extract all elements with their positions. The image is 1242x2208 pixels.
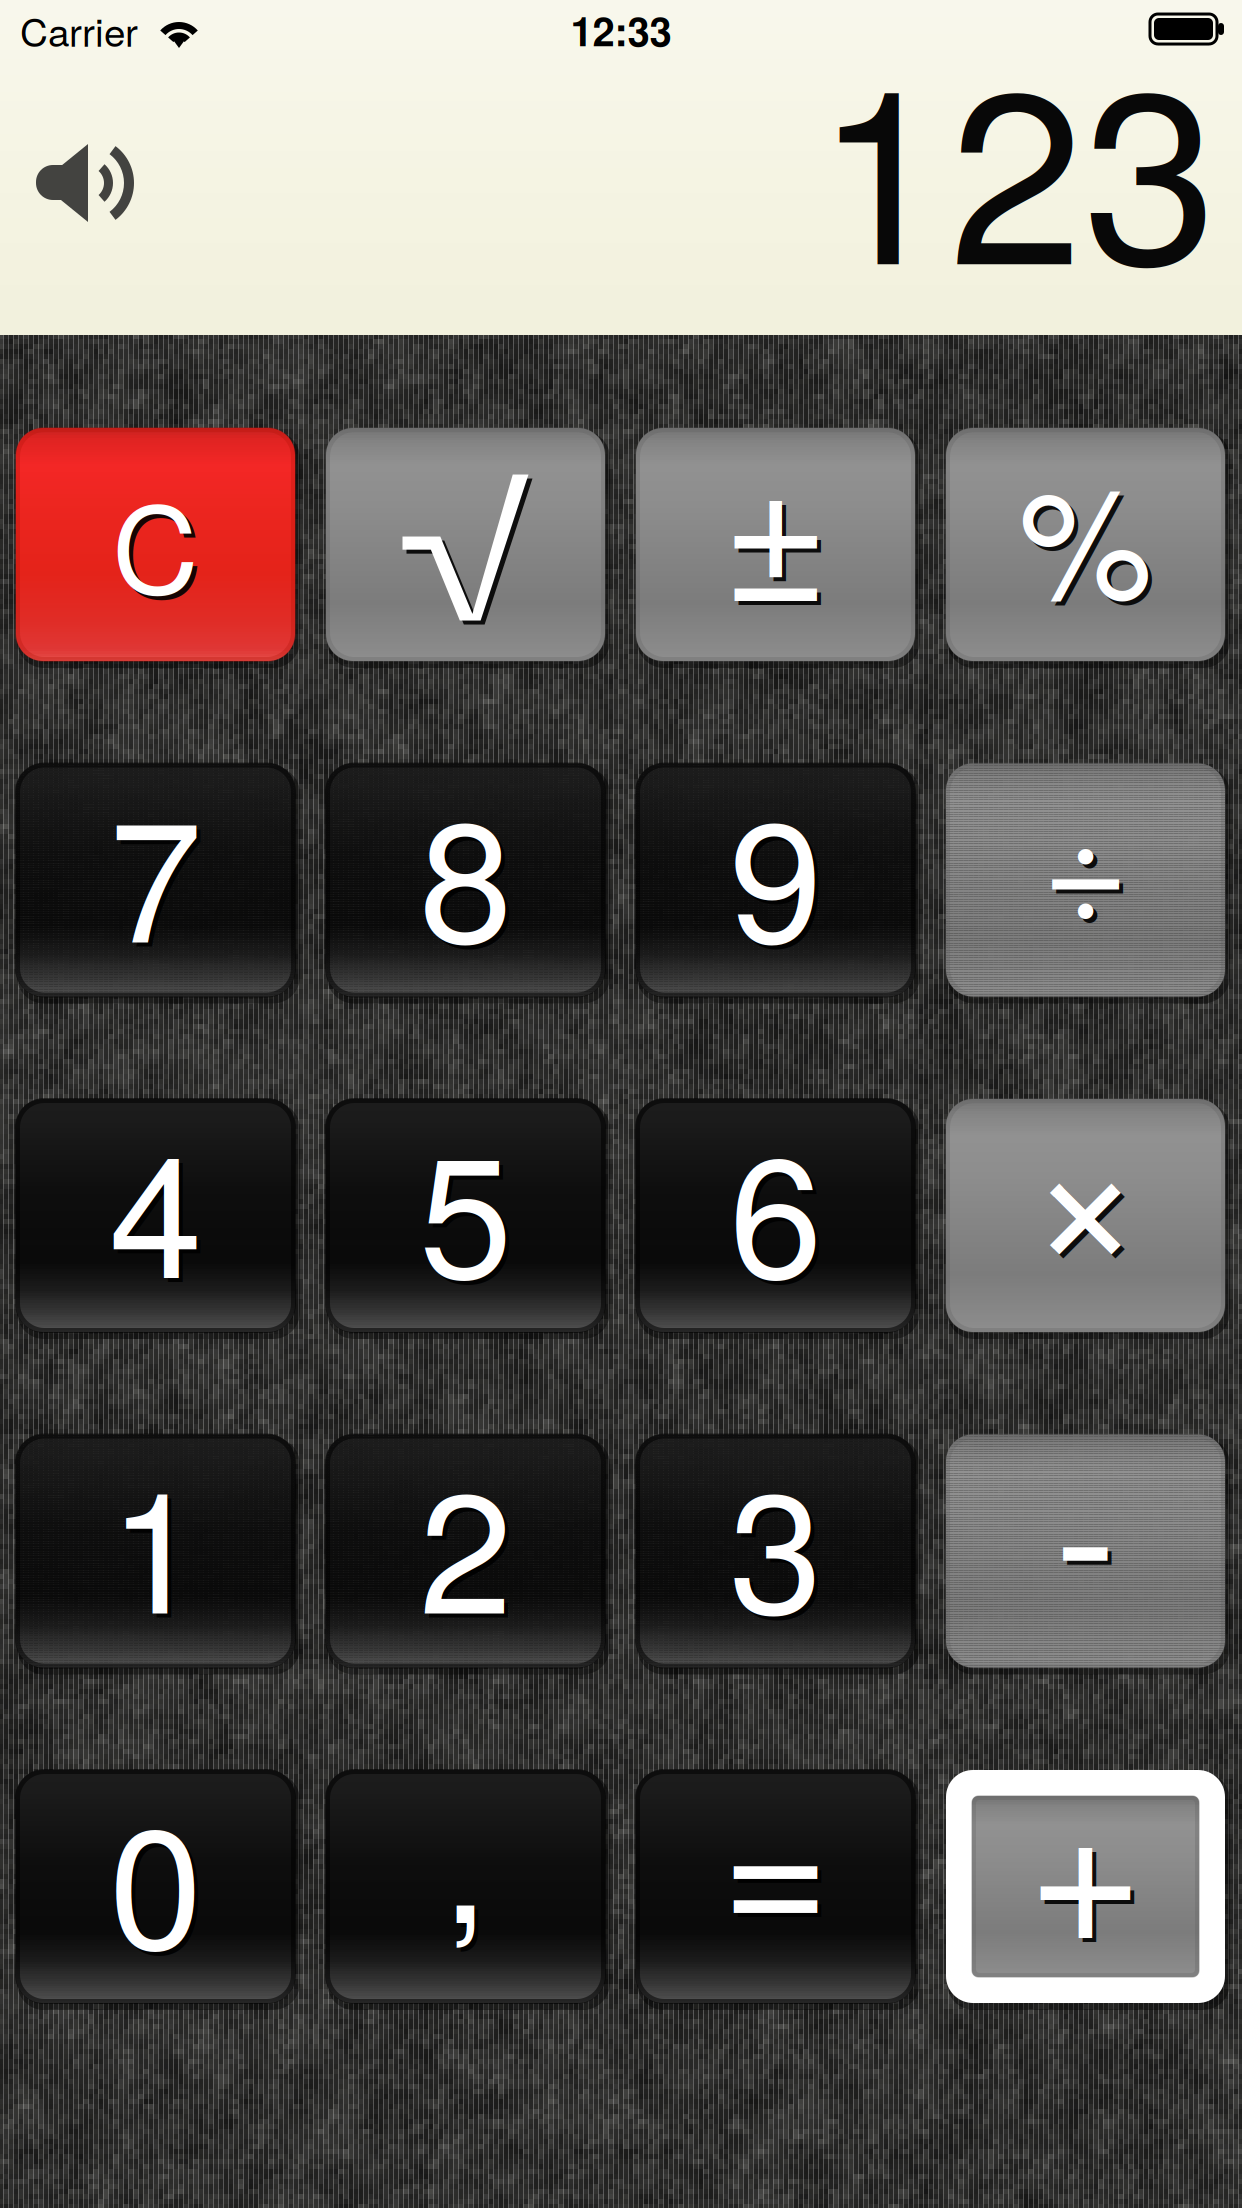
button[interactable]: Multiply bbox=[946, 1099, 1225, 1332]
staticText: 3 bbox=[729, 1421, 822, 1661]
button[interactable]: , bbox=[326, 1770, 605, 2003]
button[interactable]: 5 bbox=[326, 1099, 605, 1332]
button[interactable]: Equals bbox=[636, 1770, 915, 2003]
button[interactable]: 7 bbox=[16, 763, 295, 996]
staticText: 0 bbox=[113, 1760, 206, 2001]
staticText: ± bbox=[726, 394, 833, 657]
button[interactable]: 3 bbox=[636, 1434, 915, 1667]
staticText: 2 bbox=[423, 1425, 516, 1665]
staticText: C bbox=[116, 461, 203, 632]
staticText: × bbox=[1032, 1048, 1146, 1327]
staticText: 5 bbox=[419, 1085, 512, 1326]
staticText: , bbox=[446, 1734, 493, 1975]
button[interactable]: Minus bbox=[946, 1434, 1225, 1667]
staticText: 2 bbox=[419, 1421, 512, 1661]
button[interactable]: 6 bbox=[636, 1099, 915, 1332]
staticText: ÷ bbox=[1046, 754, 1133, 968]
staticText: , bbox=[442, 1730, 489, 1971]
button[interactable]: 9 bbox=[636, 763, 915, 996]
staticText: - bbox=[1054, 1391, 1116, 1659]
staticText: 4 bbox=[109, 1085, 202, 1326]
button[interactable]: Square root bbox=[326, 428, 605, 661]
staticText: - bbox=[1058, 1395, 1120, 1663]
staticText: 8 bbox=[423, 754, 516, 994]
staticText: ÷ bbox=[1042, 750, 1129, 964]
staticText: × bbox=[1028, 1044, 1142, 1323]
button[interactable]: 4 bbox=[16, 1099, 295, 1332]
staticText: 3 bbox=[733, 1425, 826, 1665]
staticText: 7 bbox=[113, 754, 206, 994]
button[interactable]: Sound bbox=[36, 142, 134, 224]
staticText: 6 bbox=[729, 1085, 822, 1326]
staticText: 4 bbox=[113, 1089, 206, 1330]
staticText: + bbox=[1027, 1713, 1144, 2000]
staticText: 7 bbox=[109, 750, 202, 990]
button[interactable]: 1 bbox=[16, 1434, 295, 1667]
staticText: 6 bbox=[733, 1089, 826, 1330]
staticText: 9 bbox=[729, 750, 822, 990]
staticText: ± bbox=[722, 390, 829, 653]
staticText: C bbox=[112, 457, 199, 628]
button[interactable]: Divide bbox=[946, 763, 1225, 996]
staticText: 1 bbox=[113, 1425, 206, 1665]
staticText: 123 bbox=[815, 0, 1217, 333]
button[interactable]: Plus minus bbox=[636, 428, 915, 661]
staticText: 12:33 bbox=[570, 1, 671, 59]
staticText: 5 bbox=[423, 1089, 516, 1330]
staticText: % bbox=[1018, 426, 1152, 641]
staticText: % bbox=[1022, 430, 1156, 645]
staticText: 0 bbox=[109, 1756, 202, 1997]
staticText: + bbox=[1031, 1717, 1148, 2004]
staticText: 1 bbox=[109, 1421, 202, 1661]
staticText: = bbox=[721, 1722, 830, 1989]
staticText: 8 bbox=[419, 750, 512, 990]
button[interactable]: Clear bbox=[16, 428, 295, 661]
button[interactable]: 2 bbox=[326, 1434, 605, 1667]
staticText: = bbox=[725, 1726, 834, 1993]
staticText: Carrier bbox=[20, 2, 138, 58]
button[interactable]: Plus bbox=[946, 1770, 1225, 2003]
button[interactable]: 0 bbox=[16, 1770, 295, 2003]
button[interactable]: 8 bbox=[326, 763, 605, 996]
button[interactable]: Percent bbox=[946, 428, 1225, 661]
staticText: 9 bbox=[733, 754, 826, 994]
